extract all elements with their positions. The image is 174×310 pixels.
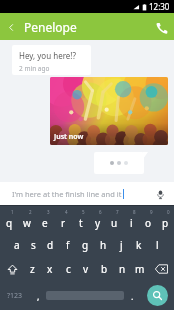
button[interactable]: Back: [0, 16, 22, 38]
staticText: g: [82, 238, 89, 252]
button[interactable]: Search: [147, 285, 168, 306]
staticText: e: [42, 216, 48, 230]
button[interactable]: Space: [46, 281, 124, 310]
staticText: a: [14, 238, 20, 252]
staticText: 5: [82, 209, 85, 215]
button[interactable]: d: [42, 233, 59, 257]
button[interactable]: Period: [124, 281, 140, 310]
button[interactable]: a: [8, 233, 25, 257]
staticText: v: [83, 262, 89, 276]
staticText: Just now: [54, 132, 84, 142]
staticText: ,: [37, 290, 40, 302]
button[interactable]: 7: [106, 209, 123, 233]
button[interactable]: s: [25, 233, 42, 257]
staticText: j: [120, 238, 123, 252]
button[interactable]: Backspace: [149, 257, 174, 281]
button[interactable]: c: [59, 257, 77, 281]
staticText: w: [23, 216, 31, 230]
staticText: 0: [167, 209, 170, 215]
staticText: d: [47, 238, 54, 252]
staticText: 2 min ago: [19, 64, 50, 73]
staticText: y: [95, 216, 101, 230]
staticText: r: [61, 216, 66, 230]
staticText: m: [135, 262, 145, 276]
button[interactable]: 9: [140, 209, 157, 233]
staticText: p: [162, 216, 169, 230]
button[interactable]: Photo message: [50, 77, 168, 145]
staticText: i: [130, 216, 133, 230]
button[interactable]: h: [94, 233, 112, 257]
button[interactable]: 8: [123, 209, 140, 233]
staticText: 3: [47, 209, 50, 215]
button[interactable]: x: [41, 257, 59, 281]
button[interactable]: Hey, you here!?: [12, 45, 91, 75]
button[interactable]: n: [113, 257, 131, 281]
staticText: 8: [133, 209, 136, 215]
staticText: Penelope: [24, 19, 77, 35]
staticText: b: [101, 262, 108, 276]
staticText: .: [131, 290, 134, 302]
staticText: l: [156, 238, 159, 252]
staticText: ?123: [7, 291, 23, 301]
button[interactable]: v: [77, 257, 95, 281]
button[interactable]: 0: [157, 209, 174, 233]
button[interactable]: z: [24, 257, 41, 281]
staticText: 2: [29, 209, 32, 215]
staticText: q: [6, 216, 13, 230]
staticText: 1: [11, 209, 14, 215]
button[interactable]: f: [59, 233, 76, 257]
button[interactable]: 4: [54, 209, 72, 233]
staticText: t: [79, 216, 83, 230]
button[interactable]: j: [112, 233, 130, 257]
button[interactable]: 5: [72, 209, 89, 233]
button[interactable]: l: [148, 233, 166, 257]
staticText: 9: [150, 209, 153, 215]
button[interactable]: Penelope: [22, 19, 79, 35]
staticText: f: [66, 238, 70, 252]
staticText: h: [100, 238, 107, 252]
staticText: 12:30: [149, 1, 170, 12]
staticText: z: [30, 262, 35, 276]
button[interactable]: 6: [89, 209, 106, 233]
button[interactable]: k: [130, 233, 148, 257]
staticText: k: [136, 238, 142, 252]
button[interactable]: I'm here at the finish line and it: [0, 182, 174, 205]
staticText: 6: [99, 209, 102, 215]
staticText: 4: [65, 209, 68, 215]
button[interactable]: Voice input: [152, 186, 168, 202]
staticText: Hey, you here!?: [19, 50, 76, 61]
staticText: x: [47, 262, 53, 276]
button[interactable]: b: [95, 257, 113, 281]
button[interactable]: 3: [36, 209, 54, 233]
button[interactable]: m: [131, 257, 149, 281]
button[interactable]: 2: [18, 209, 36, 233]
staticText: 7: [116, 209, 119, 215]
button[interactable]: Typing: [94, 152, 144, 174]
button[interactable]: Comma: [30, 281, 46, 310]
button[interactable]: g: [76, 233, 94, 257]
staticText: s: [31, 238, 36, 252]
staticText: I'm here at the finish line and it: [12, 189, 122, 199]
staticText: n: [119, 262, 126, 276]
button[interactable]: 1: [0, 209, 18, 233]
staticText: c: [66, 262, 71, 276]
button[interactable]: Symbols: [0, 281, 30, 310]
staticText: o: [145, 216, 152, 230]
staticText: u: [111, 216, 118, 230]
button[interactable]: Shift: [0, 257, 24, 281]
button[interactable]: Call: [148, 14, 174, 40]
